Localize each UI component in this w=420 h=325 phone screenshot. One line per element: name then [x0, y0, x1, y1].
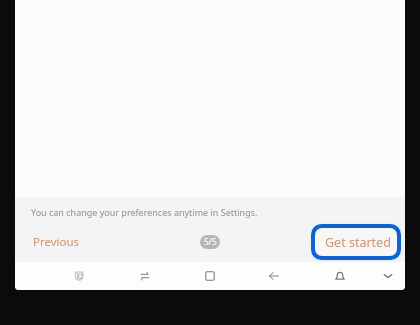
- staticText: You can change your preferences anytime …: [31, 206, 258, 218]
- button[interactable]: Collapse: [373, 262, 403, 290]
- button[interactable]: Secure folder: [64, 262, 94, 290]
- button[interactable]: Back: [259, 262, 289, 290]
- button[interactable]: Smart switch: [130, 262, 160, 290]
- button[interactable]: Notifications: [325, 262, 355, 290]
- button[interactable]: Get started: [315, 228, 397, 256]
- staticText: Get started: [325, 234, 391, 251]
- staticText: 5/5: [204, 236, 217, 248]
- button[interactable]: Previous: [26, 229, 87, 255]
- staticText: Previous: [33, 234, 80, 250]
- button[interactable]: Recent apps: [195, 262, 225, 290]
